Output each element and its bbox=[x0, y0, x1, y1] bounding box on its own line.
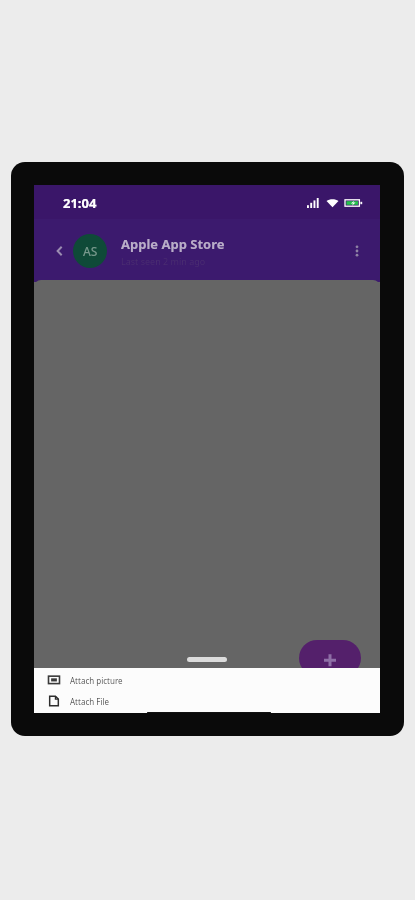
button[interactable]: More options bbox=[342, 236, 372, 266]
staticText: Attach File bbox=[70, 696, 110, 707]
button[interactable]: Attach picture bbox=[34, 672, 380, 688]
staticText: Attach picture bbox=[70, 675, 123, 686]
button[interactable]: AS bbox=[73, 234, 107, 268]
button[interactable]: Apple App Store bbox=[121, 235, 350, 267]
button[interactable]: Back bbox=[45, 236, 75, 266]
staticText: Last seen 2 min ago bbox=[121, 255, 206, 267]
staticText: AS bbox=[83, 243, 98, 259]
staticText: 21:04 bbox=[63, 194, 97, 212]
button[interactable]: Attach File bbox=[34, 693, 380, 709]
staticText: Apple App Store bbox=[121, 235, 225, 253]
button[interactable]: New message bbox=[299, 640, 361, 676]
